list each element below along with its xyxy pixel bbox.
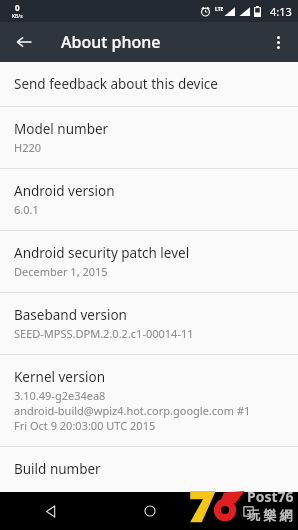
staticText: Build number [14,460,101,478]
staticText: H220 [14,140,42,155]
button[interactable]: More options [262,26,294,58]
button[interactable]: Navigate up [8,26,40,58]
button[interactable]: Recent apps [199,492,298,530]
button[interactable]: Back [0,492,100,530]
button[interactable]: Home [100,492,199,530]
button[interactable]: Build number [0,447,298,492]
staticText: LTE [215,6,224,13]
staticText: android-build@wpiz4.hot.corp.google.com … [14,403,251,418]
staticText: Model number [14,120,109,138]
staticText: 4:13 [270,4,292,19]
staticText: Android security patch level [14,244,190,262]
staticText: About phone [61,31,161,53]
staticText: Kernel version [14,368,106,386]
staticText: Fri Oct 9 20:03:00 UTC 2015 [14,418,156,433]
staticText: Send feedback about this device [14,75,218,93]
button[interactable]: Kernel version [0,355,298,446]
button[interactable]: Android security patch level [0,231,298,292]
staticText: 6.0.1 [14,202,39,217]
staticText: 玩 樂 網 [247,506,293,524]
button[interactable]: Android version [0,169,298,230]
button[interactable]: Baseband version [0,293,298,354]
staticText: SEED-MPSS.DPM.2.0.2.c1-00014-11 [14,326,194,341]
staticText: Baseband version [14,306,127,324]
staticText: 0 [15,2,20,13]
staticText: KB/s [12,13,23,20]
staticText: Android version [14,182,115,200]
staticText: December 1, 2015 [14,264,108,279]
button[interactable]: Model number [0,107,298,168]
staticText: Post76 [247,487,294,506]
staticText: 3.10.49-g2e34ea8 [14,388,106,403]
button[interactable]: Send feedback about this device [0,62,298,106]
